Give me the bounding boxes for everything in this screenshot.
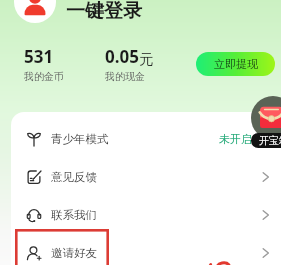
button[interactable]: 开宝箱 — [251, 133, 281, 148]
staticText: 531 — [24, 45, 54, 68]
button[interactable]: Avatar — [14, 0, 56, 23]
staticText: 一键登录 — [66, 0, 142, 23]
button[interactable]: 开宝箱 — [251, 96, 281, 140]
staticText: 开宝箱 — [259, 134, 281, 147]
staticText: 邀请好友 — [51, 246, 97, 260]
button[interactable]: 立即提现 — [196, 52, 275, 76]
button[interactable]: 意见反馈 — [11, 158, 281, 196]
staticText: 立即提现 — [214, 57, 258, 71]
button[interactable]: 联系我们 — [11, 196, 281, 234]
staticText: 我的金币 — [24, 70, 64, 83]
staticText: 联系我们 — [51, 208, 97, 222]
staticText: 我的现金 — [105, 70, 145, 83]
staticText: 元 — [139, 50, 154, 68]
button[interactable]: 青少年模式 — [11, 120, 281, 158]
staticText: 青少年模式 — [51, 132, 109, 146]
staticText: 0.05 — [105, 45, 139, 68]
staticText: 未开启 — [219, 132, 252, 146]
button[interactable]: 邀请好友 — [11, 234, 281, 265]
staticText: 意见反馈 — [51, 170, 97, 184]
